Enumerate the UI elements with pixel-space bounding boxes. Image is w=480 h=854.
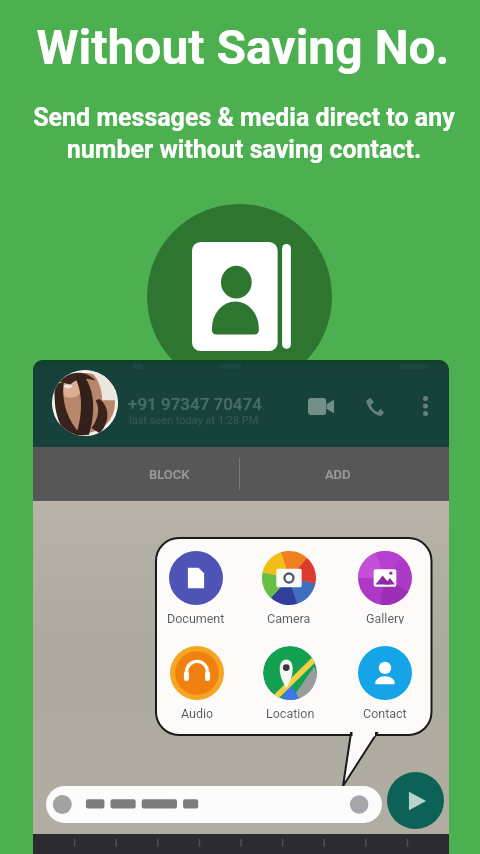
- button[interactable]: Contact: [351, 646, 419, 719]
- staticText: last seen today at 1:28 PM: [129, 414, 259, 427]
- button[interactable]: Document: [162, 551, 230, 624]
- staticText: Without Saving No.: [36, 19, 450, 75]
- staticText: Gallery: [366, 611, 405, 624]
- staticText: Camera: [267, 611, 311, 624]
- staticText: Contact: [363, 706, 407, 719]
- button[interactable]: Call: [358, 390, 390, 422]
- staticText: Document: [167, 611, 225, 624]
- button[interactable]: More options: [409, 390, 441, 422]
- button[interactable]: Location: [256, 646, 324, 719]
- staticText: BLOCK: [149, 467, 190, 482]
- button[interactable]: [46, 786, 382, 823]
- button[interactable]: Video call: [305, 390, 337, 422]
- button[interactable]: ADD: [273, 447, 403, 501]
- staticText: Location: [266, 706, 315, 719]
- button[interactable]: Gallery: [351, 551, 419, 624]
- button[interactable]: Audio: [163, 646, 231, 719]
- staticText: +91 97347 70474: [128, 394, 262, 410]
- button[interactable]: Send: [387, 772, 444, 829]
- button[interactable]: Contact photo: [52, 370, 118, 436]
- staticText: ADD: [325, 467, 351, 482]
- button[interactable]: BLOCK: [99, 447, 239, 501]
- button[interactable]: Camera: [255, 551, 323, 624]
- staticText: Audio: [181, 706, 214, 719]
- staticText: Send messages & media direct to any numb…: [33, 103, 455, 164]
- button[interactable]: +91 97347 70474: [128, 394, 288, 410]
